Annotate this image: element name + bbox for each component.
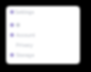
button[interactable]	[10, 22, 40, 28]
staticText: Privacy	[16, 42, 33, 48]
other: Menu	[10, 10, 14, 14]
staticText: Storage	[16, 52, 35, 58]
button[interactable]: Account	[10, 32, 40, 38]
staticText: Account	[16, 32, 36, 38]
button[interactable]: Menu	[10, 9, 40, 15]
staticText: Settings list	[15, 9, 40, 15]
button[interactable]: Storage	[10, 52, 40, 58]
button[interactable]: Privacy	[10, 42, 40, 48]
